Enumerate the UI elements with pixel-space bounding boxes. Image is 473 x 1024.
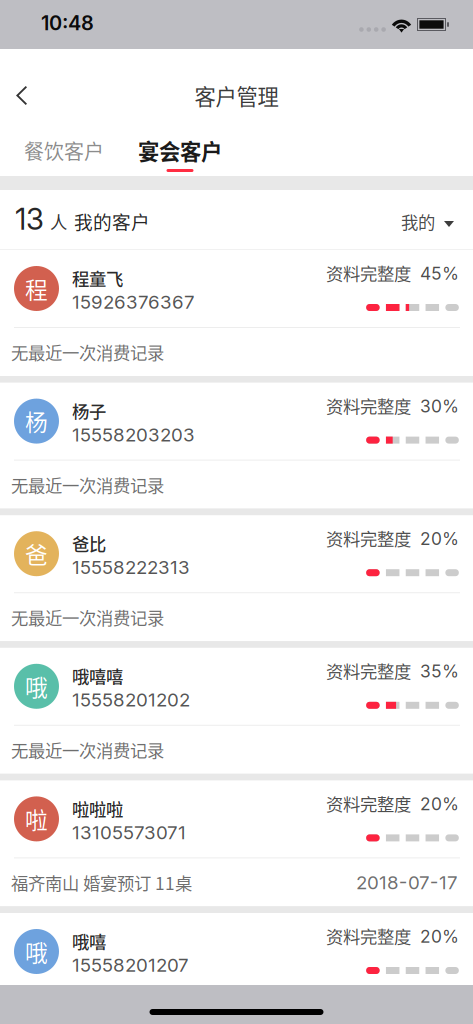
staticText: 15558222313	[72, 556, 190, 578]
staticText: 无最近一次消费记录	[11, 737, 164, 762]
staticText: 哦嘻	[72, 928, 106, 954]
staticText: 无最近一次消费记录	[11, 1002, 164, 1024]
staticText: 资料完整度	[326, 393, 411, 418]
button[interactable]: 宴会客户	[121, 126, 246, 172]
staticText: 2018-07-17	[356, 871, 458, 894]
staticText: 我的	[401, 209, 435, 234]
staticText: 20%	[420, 926, 459, 947]
staticText: 爸	[25, 537, 48, 570]
staticText: 15558201207	[72, 954, 189, 976]
staticText: 餐饮客户	[24, 136, 104, 165]
staticText: 资料完整度	[326, 791, 411, 816]
staticText: 我的客户	[74, 207, 150, 234]
staticText: 资料完整度	[326, 658, 411, 683]
staticText: 资料完整度	[326, 260, 411, 286]
staticText: 杨	[25, 405, 48, 437]
staticText: 福齐南山 婚宴预订 11桌	[11, 870, 192, 895]
staticText: 杨子	[72, 398, 106, 423]
staticText: 哦	[25, 935, 48, 968]
staticText: 资料完整度	[326, 526, 411, 551]
staticText: 宴会客户	[138, 135, 222, 166]
staticText: 哦嘻嘻	[72, 663, 123, 688]
button[interactable]: 啦	[0, 780, 473, 906]
staticText: 资料完整度	[326, 923, 411, 949]
button[interactable]: 程	[0, 250, 473, 376]
staticText: 13	[15, 201, 44, 237]
button[interactable]: 餐饮客户	[0, 126, 121, 172]
staticText: 程童飞	[72, 265, 123, 291]
staticText: 哦	[25, 670, 48, 703]
staticText: 15558203203	[72, 423, 195, 446]
staticText: 15926376367	[72, 291, 195, 313]
staticText: 无最近一次消费记录	[11, 472, 164, 497]
staticText: 程	[25, 272, 48, 305]
staticText: 20%	[420, 793, 459, 814]
button[interactable]: 杨	[0, 383, 473, 509]
staticText: 13105573071	[72, 821, 186, 844]
staticText: 啦啦啦	[72, 796, 123, 821]
staticText: 无最近一次消费记录	[11, 605, 164, 630]
staticText: 15558201202	[72, 688, 190, 711]
staticText: 爸比	[72, 531, 106, 556]
button[interactable]: 哦	[0, 648, 473, 774]
button[interactable]: 哦	[0, 913, 473, 1024]
staticText: 无最近一次消费记录	[11, 339, 164, 365]
staticText: 20%	[420, 528, 459, 549]
button[interactable]: 爸	[0, 515, 473, 641]
button[interactable]: 我的	[387, 189, 454, 232]
button[interactable]: 返回	[0, 73, 49, 118]
staticText: 人	[50, 209, 67, 234]
staticText: 10:48	[41, 11, 94, 35]
staticText: 30%	[420, 396, 459, 417]
staticText: 35%	[420, 661, 459, 682]
staticText: 啦	[25, 802, 48, 835]
staticText: 客户管理	[194, 80, 278, 111]
staticText: 45%	[420, 263, 459, 284]
